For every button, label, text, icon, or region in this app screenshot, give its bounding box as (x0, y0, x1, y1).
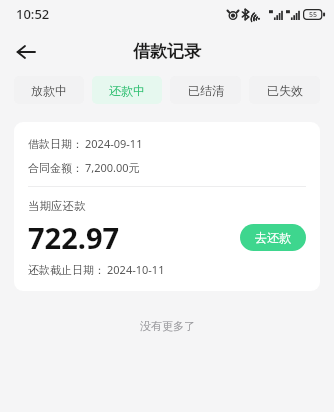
staticText: 722.97 (28, 218, 120, 257)
button[interactable]: 放款中 (14, 76, 84, 104)
staticText: 55 (309, 10, 318, 20)
staticText: 10:52 (16, 5, 50, 23)
staticText: 已结清 (188, 83, 224, 98)
staticText: 去还款 (255, 230, 291, 245)
staticText: 没有更多了 (140, 319, 195, 333)
staticText: 合同金额： (28, 161, 83, 175)
button[interactable]: Back (6, 32, 46, 72)
staticText: 放款中 (31, 83, 67, 98)
staticText: 还款中 (109, 83, 145, 98)
staticText: 7,200.00元 (85, 160, 140, 175)
button[interactable]: 已结清 (170, 76, 241, 104)
staticText: 还款截止日期： (28, 263, 105, 277)
staticText: 借款记录 (133, 41, 201, 62)
button[interactable]: 借款日期： (14, 122, 320, 291)
staticText: 已失效 (267, 83, 303, 98)
staticText: 借款日期： (28, 137, 83, 151)
staticText: 2024-09-11 (85, 136, 143, 151)
button[interactable]: 还款中 (92, 76, 162, 104)
button[interactable]: 已失效 (249, 76, 320, 104)
staticText: 当期应还款 (28, 199, 86, 213)
staticText: 2024-10-11 (107, 262, 165, 277)
button[interactable]: 去还款 (240, 224, 306, 251)
